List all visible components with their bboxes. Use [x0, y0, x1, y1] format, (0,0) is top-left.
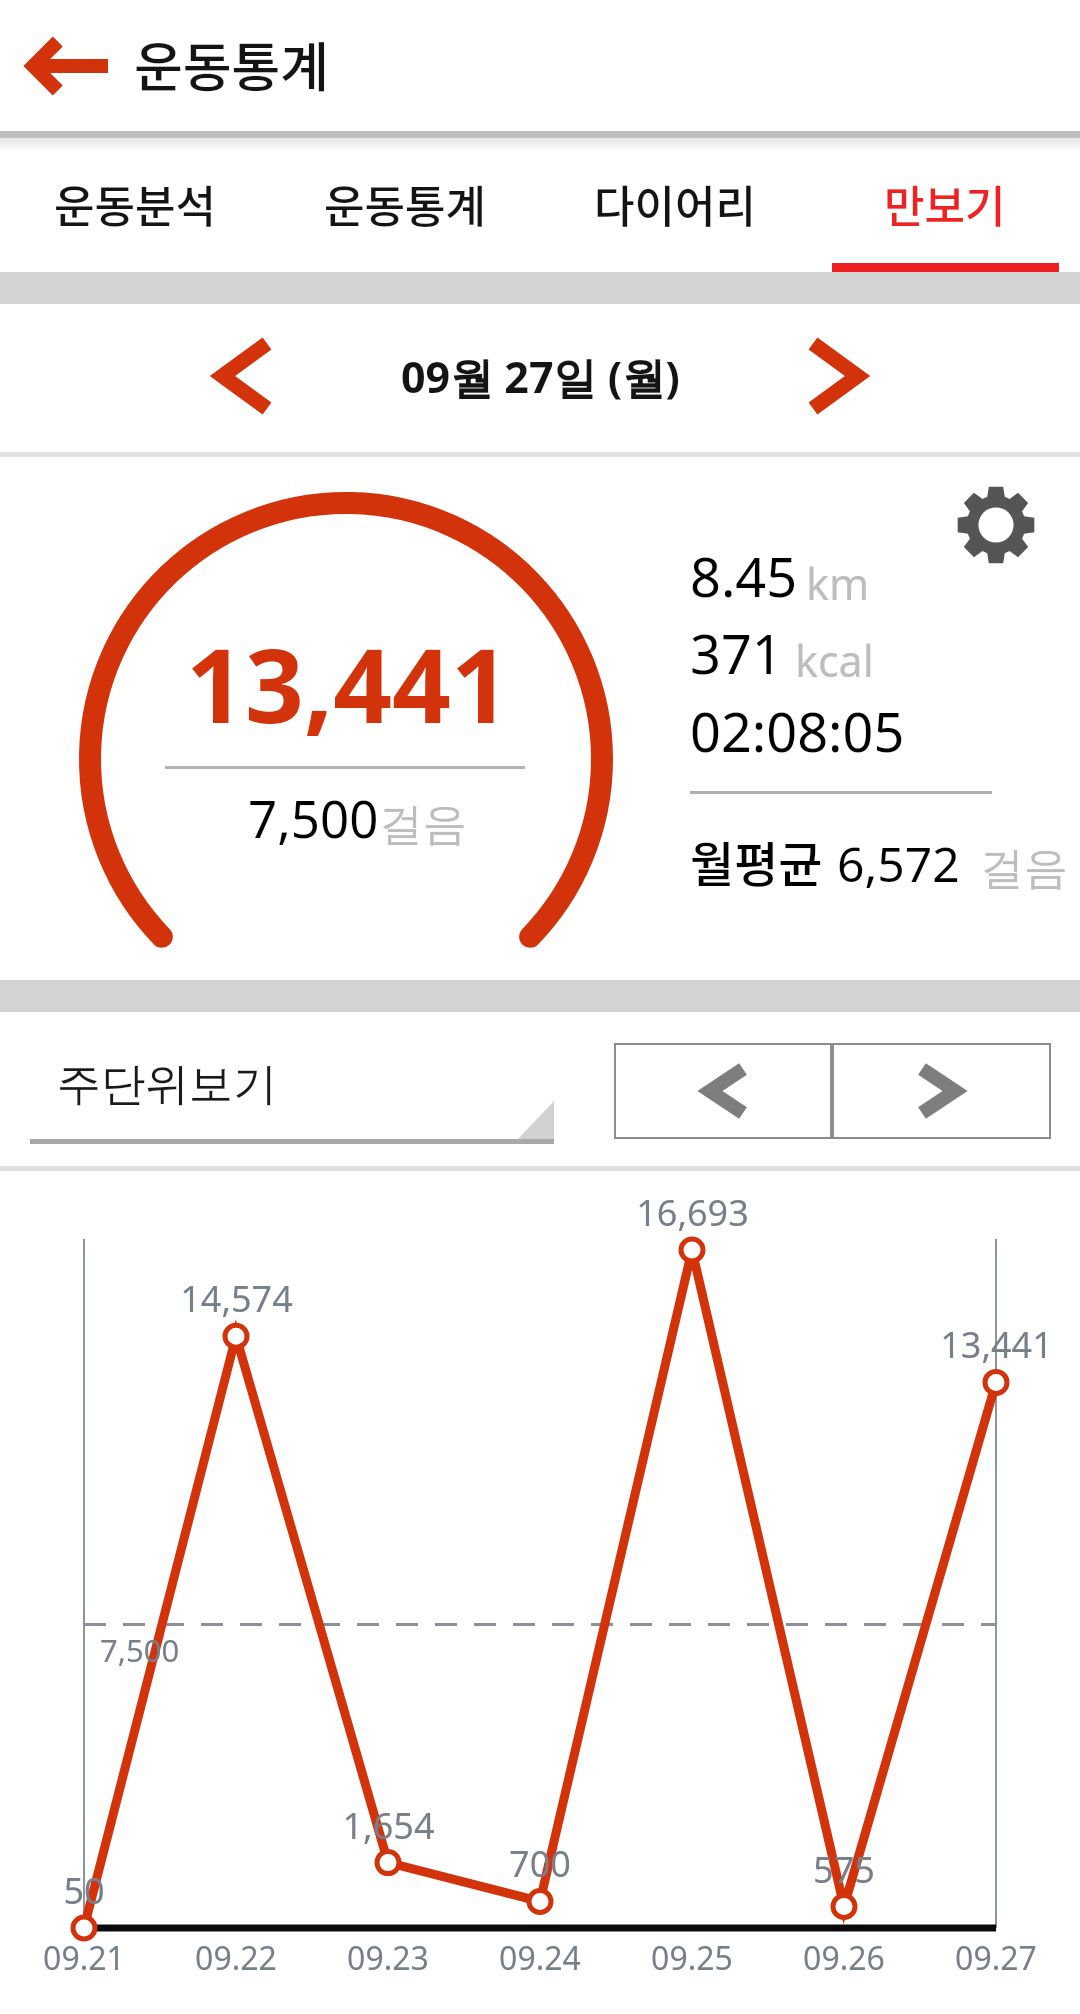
button[interactable]: Previous week — [614, 1043, 832, 1139]
staticText: 6,572 — [837, 831, 960, 896]
staticText: 09.23 — [347, 1936, 429, 1980]
staticText: 09.24 — [499, 1936, 581, 1980]
staticText: 7,500 — [100, 1629, 180, 1671]
button[interactable]: 다이어리 — [540, 136, 810, 272]
staticText: 1,654 — [342, 1801, 435, 1850]
staticText: 16,693 — [636, 1188, 749, 1237]
button[interactable]: Back — [0, 0, 134, 131]
staticText: 운동통계 — [324, 172, 486, 236]
staticText: 운동통계 — [134, 26, 330, 103]
staticText: 371 — [690, 616, 783, 690]
staticText: 13,441 — [940, 1320, 1053, 1369]
staticText: 만보기 — [884, 172, 1006, 236]
staticText: 걸음 — [379, 797, 467, 852]
staticText: 09.21 — [43, 1936, 125, 1980]
button[interactable]: 만보기 — [810, 136, 1080, 272]
staticText: 월평균 — [690, 826, 823, 896]
staticText: 7,500 — [248, 783, 379, 852]
button[interactable]: 주단위보기 — [30, 1056, 554, 1144]
staticText: 02:08:05 — [690, 694, 905, 768]
staticText: 09.27 — [955, 1936, 1037, 1980]
staticText: 700 — [509, 1839, 571, 1888]
staticText: 걸음 — [980, 841, 1068, 896]
button[interactable]: 운동통계 — [270, 136, 540, 272]
staticText: 09월 27일 (월) — [401, 347, 680, 406]
staticText: km — [806, 554, 870, 613]
staticText: 09.25 — [651, 1936, 733, 1980]
staticText: 14,574 — [180, 1274, 293, 1323]
staticText: 09.22 — [195, 1936, 277, 1980]
button[interactable]: Previous day — [130, 304, 352, 448]
staticText: 다이어리 — [594, 172, 756, 236]
staticText: 575 — [813, 1845, 875, 1894]
button[interactable]: Back — [0, 0, 1080, 131]
button[interactable]: Next week — [832, 1043, 1051, 1139]
staticText: 주단위보기 — [57, 1057, 277, 1112]
staticText: 8.45 — [690, 539, 798, 613]
staticText: 13,441 — [186, 613, 510, 753]
button[interactable]: Settings — [936, 465, 1056, 585]
staticText: 09.26 — [803, 1936, 885, 1980]
staticText: 50 — [63, 1866, 105, 1915]
button[interactable]: 운동분석 — [0, 136, 270, 272]
staticText: kcal — [795, 631, 874, 690]
button[interactable]: Next day — [728, 304, 950, 448]
staticText: 운동분석 — [54, 172, 216, 236]
